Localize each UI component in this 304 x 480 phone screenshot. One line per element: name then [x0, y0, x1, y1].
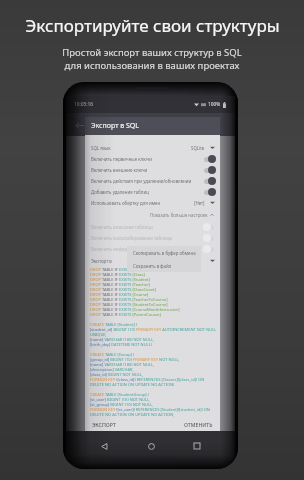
button[interactable]: SQL язык — [91, 142, 215, 153]
staticText: DELETE NO ACTION ON UPDATE NO ACTION, — [90, 412, 175, 417]
button[interactable]: Включить информацию о цвете — [91, 243, 215, 254]
staticText: DROP TABLE IF EXISTS [Class] — [90, 272, 145, 277]
staticText: CREATE TABLE [Group] ( — [90, 352, 135, 357]
button[interactable]: Включить описание таблицы — [91, 221, 215, 232]
button[interactable]: Использовать обертку для имен — [91, 197, 215, 208]
staticText: Экспорт в SQL — [91, 121, 139, 131]
staticText: Включить информацию о цвете — [91, 246, 159, 252]
button[interactable]: Включить масштабирование таблицы — [91, 232, 215, 243]
staticText: DROP TABLE IF EXISTS [Course] — [90, 292, 149, 297]
staticText: Включить внешние ключи — [91, 167, 148, 173]
button[interactable]: Сохранить в файл — [133, 259, 201, 272]
button[interactable]: Экспорт в — [91, 255, 215, 266]
button[interactable]: ЭКСПОРТ — [91, 420, 117, 429]
button[interactable]: Back — [96, 438, 112, 454]
staticText: Включить первичные ключи — [91, 156, 152, 162]
staticText: 100% — [208, 101, 221, 108]
staticText: DROP TABLE IF EXISTS [StudentToCourse] — [90, 302, 168, 307]
staticText: DROP TABLE IF EXISTS [ClassCount] — [90, 287, 157, 292]
staticText: Экспортируйте свои структуры — [25, 14, 280, 37]
staticText: [name] VARCHAR (180) NOT NULL, — [90, 337, 155, 342]
staticText: [birth_day] DATETIME NOT NULL) — [90, 342, 152, 347]
button[interactable]: Скопировать в буфер обмена — [133, 246, 201, 259]
staticText: FOREIGN KEY ([class_id]) REFERENCES [Cla… — [90, 377, 205, 382]
staticText: Включить действия при удалении/обновлени… — [91, 178, 192, 184]
staticText: DROP TABLE IF EXISTS [TeacherToCourse] — [90, 297, 168, 302]
staticText: [description] VARCHAR, — [90, 367, 134, 372]
button[interactable]: Включить внешние ключи — [91, 164, 215, 175]
staticText: Включить описание таблицы — [91, 224, 154, 230]
staticText: ОТМЕНИТЬ — [184, 421, 213, 428]
staticText: SQL язык — [91, 145, 111, 151]
staticText: [st_group] BIGINT (10) NOT NULL, — [90, 402, 154, 407]
staticText: Сохранить в файл — [133, 263, 172, 269]
staticText: Простой экспорт ваших структур в SQL для… — [62, 46, 242, 72]
other: Export to SQL dialog — [85, 117, 220, 431]
staticText: DELETE NO ACTION ON UPDATE NO ACTION) — [90, 382, 175, 387]
button[interactable]: Показать больше настроек — [85, 208, 214, 221]
staticText: ЭКСПОРТ — [92, 421, 116, 428]
staticText: CREATE TABLE [StudentGroup] ( — [90, 392, 149, 397]
staticText: DROP TABLE IF EXISTS [ParentCourse] — [90, 312, 161, 317]
staticText: UNIQUE, — [90, 332, 107, 337]
staticText: Экспорт в — [91, 258, 112, 264]
staticText: Использовать обертку для имен — [91, 200, 161, 206]
button[interactable]: Recent apps — [189, 438, 205, 454]
staticText: SQLite — [191, 145, 205, 151]
staticText: [st_user] BIGINT (10) NOT NULL, — [90, 397, 151, 402]
staticText: Показать больше настроек — [150, 212, 208, 218]
staticText: [Нет] — [194, 200, 205, 206]
staticText: [group_id] BIGINT (10) PRIMARY KEY NOT N… — [90, 357, 180, 362]
button[interactable]: Добавить удаление таблиц — [91, 186, 215, 197]
staticText: DROP TABLE IF EXISTS [Teacher] — [90, 282, 150, 287]
button[interactable]: Включить действия при удалении/обновлени… — [91, 175, 215, 186]
staticText: FOREIGN KEY ([st_user]) REFERENCES [Stud… — [90, 407, 210, 412]
button[interactable]: Включить первичные ключи — [91, 153, 215, 164]
staticText: DROP TABLE IF EXISTS [CourseMonthInstruc… — [90, 307, 180, 312]
staticText: 10:05:16 — [74, 101, 94, 108]
staticText: CREATE TABLE [Student] ( — [90, 322, 138, 327]
staticText: DROP TABLE IF EXISTS [Student] — [90, 277, 150, 282]
button[interactable]: Home — [143, 438, 159, 454]
button[interactable]: Navigate back — [72, 118, 86, 132]
staticText: [student_id] BIGINT (10) PRIMARY KEY AUT… — [90, 327, 217, 332]
staticText: [name] VARCHAR (180) NOT NULL, — [90, 362, 155, 367]
staticText: DROP TABLE IF EXISTS [Teacher] — [90, 267, 150, 272]
staticText: [class_id] BIGINT NOT NULL, — [90, 372, 144, 377]
staticText: Добавить удаление таблиц — [91, 189, 149, 195]
staticText: Включить масштабирование таблицы — [91, 235, 173, 241]
button[interactable]: ОТМЕНИТЬ — [183, 420, 214, 429]
staticText: Скопировать в буфер обмена — [133, 250, 196, 256]
staticText: FOREIGN KEY ([st_group]) REFERENCES [Gro… — [90, 417, 207, 418]
